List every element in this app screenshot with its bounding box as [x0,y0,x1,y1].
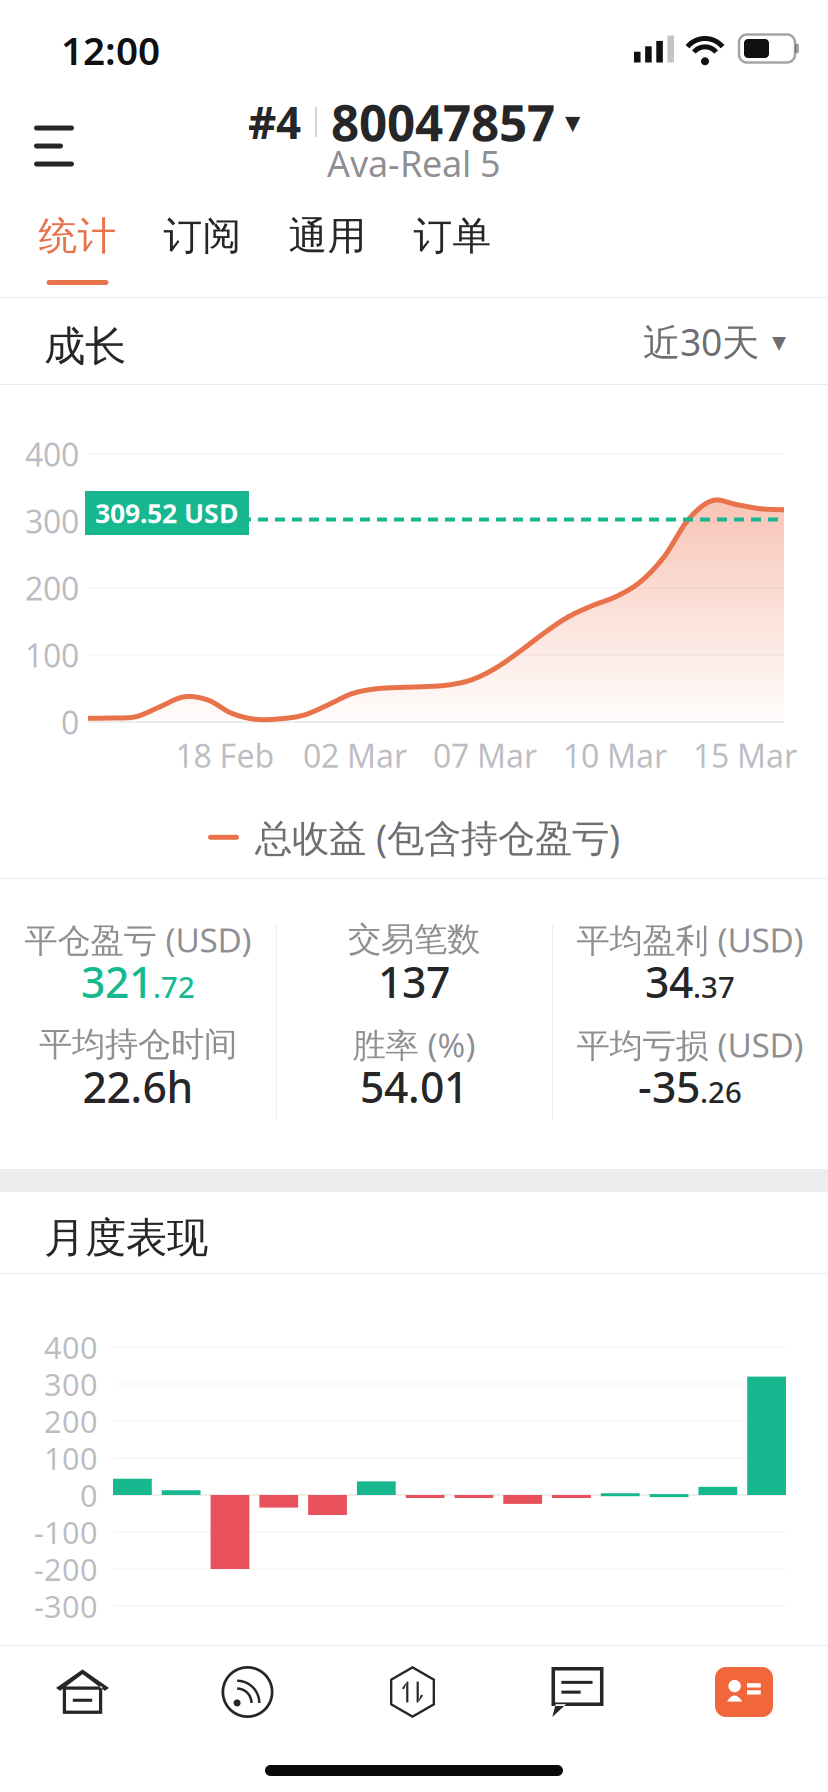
staticText: .72 [153,967,195,1006]
button[interactable]: Trade [330,1646,495,1738]
staticText: 通用 [288,212,366,260]
button[interactable]: 订单 [390,192,515,298]
staticText: 0 [80,1475,98,1515]
staticText: 总收益 (包含持仓盈亏) [255,812,620,862]
staticText: Ava-Real 5 [327,139,501,187]
button[interactable]: 近30天 [643,317,786,366]
staticText: 月度表现 [44,1213,208,1263]
button[interactable]: Messages [495,1646,660,1738]
staticText: 34 [645,953,693,1010]
staticText: 137 [378,953,450,1010]
staticText: 400 [44,1327,98,1367]
button[interactable]: Account [660,1646,828,1738]
staticText: 309.52 USD [95,495,239,531]
staticText: 54.01 [360,1058,468,1115]
staticText: 近30天 [643,317,759,366]
button[interactable]: Signals [165,1646,330,1738]
staticText: 18 Feb [175,734,274,776]
staticText: ▾ [772,326,786,357]
staticText: -100 [34,1512,98,1552]
button[interactable]: Menu [24,86,130,194]
button[interactable]: 统计 [15,192,140,298]
staticText: 成长 [44,321,126,372]
staticText: 321 [81,953,153,1010]
staticText: -35 [638,1058,700,1115]
staticText: 400 [25,433,79,475]
staticText: 200 [25,567,79,609]
staticText: 07 Mar [433,734,537,776]
staticText: -300 [34,1586,98,1626]
staticText: 100 [25,634,79,676]
staticText: #4 [248,93,301,151]
staticText: ▾ [555,105,580,139]
button[interactable]: 通用 [265,192,390,298]
button[interactable]: 订阅 [140,192,265,298]
staticText: 平均持仓时间 [39,1024,237,1065]
staticText: 300 [44,1364,98,1404]
staticText: 订单 [413,212,491,260]
staticText: 胜率 (%) [352,1022,475,1067]
staticText: 平仓盈亏 (USD) [24,917,251,962]
staticText: 平均盈利 (USD) [576,917,803,962]
staticText: 300 [25,500,79,542]
staticText: 交易笔数 [348,919,480,960]
button[interactable]: Home [0,1646,165,1738]
staticText: 02 Mar [303,734,407,776]
staticText: .26 [700,1072,742,1111]
staticText: 200 [44,1401,98,1441]
staticText: -200 [34,1549,98,1589]
staticText: 统计 [38,212,116,260]
staticText: 12:00 [61,24,160,76]
staticText: .37 [693,967,735,1006]
staticText: 15 Mar [693,734,797,776]
staticText: 平均亏损 (USD) [576,1022,803,1067]
staticText: 10 Mar [563,734,667,776]
staticText: 80047857 [331,89,555,155]
staticText: 0 [61,701,79,743]
staticText: 100 [44,1438,98,1478]
staticText: 22.6h [82,1058,193,1115]
staticText: 订阅 [163,212,241,260]
